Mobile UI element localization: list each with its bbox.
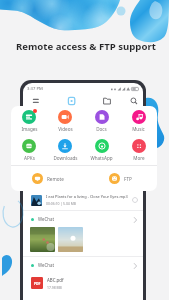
- staticText: Videos: [58, 126, 73, 132]
- staticText: WhatsApp: [90, 155, 113, 161]
- staticText: WeChat: [38, 216, 55, 222]
- staticText: 3:37 PM: [27, 86, 43, 92]
- button[interactable]: Remote: [11, 166, 84, 191]
- button[interactable]: More: [120, 139, 157, 161]
- staticText: Remote access & FTP support: [16, 40, 156, 53]
- staticText: PDF: [34, 281, 41, 286]
- staticText: 00:06:10 | 5.04 MB: [46, 201, 76, 206]
- staticText: Images: [21, 126, 38, 132]
- staticText: Remote: [47, 176, 64, 182]
- button[interactable]: [58, 227, 83, 252]
- staticText: More: [133, 155, 145, 161]
- button[interactable]: Images: [11, 110, 47, 132]
- button[interactable]: PDF: [23, 273, 143, 293]
- staticText: WeChat: [38, 262, 55, 268]
- button[interactable]: Videos: [47, 110, 83, 132]
- button[interactable]: I eat Plants for a living - Close Your E…: [23, 190, 143, 210]
- button[interactable]: [30, 227, 55, 252]
- staticText: APKs: [24, 155, 35, 161]
- staticText: FTP: [124, 176, 132, 182]
- staticText: ABC.pdf: [47, 277, 64, 283]
- button[interactable]: Music: [120, 110, 157, 132]
- staticText: Docs: [96, 126, 107, 132]
- button[interactable]: APKs: [11, 139, 47, 161]
- staticText: I eat Plants for a living - Close Your E…: [46, 194, 128, 199]
- button[interactable]: Docs: [83, 110, 120, 132]
- staticText: Music: [132, 126, 145, 132]
- button[interactable]: WhatsApp: [83, 139, 120, 161]
- button[interactable]: FTP: [84, 166, 157, 191]
- button[interactable]: Downloads: [47, 139, 83, 161]
- staticText: Downloads: [53, 155, 78, 161]
- staticText: 17.98 MB: [47, 285, 62, 290]
